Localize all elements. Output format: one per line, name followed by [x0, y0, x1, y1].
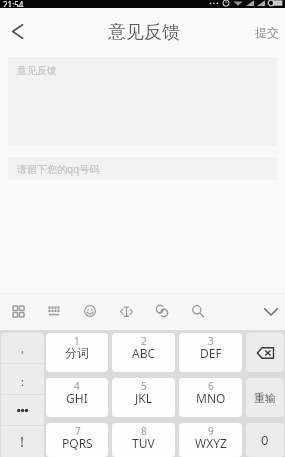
- staticText: ABC: [132, 345, 156, 361]
- staticText: 意见反馈: [108, 21, 180, 44]
- button[interactable]: 9: [179, 423, 242, 457]
- button[interactable]: Backspace: [246, 333, 284, 372]
- button[interactable]: !: [1, 426, 44, 456]
- button[interactable]: More symbols: [1, 395, 44, 425]
- button[interactable]: :: [1, 364, 44, 394]
- button[interactable]: 2: [112, 333, 175, 372]
- button[interactable]: Hide keyboard: [258, 299, 284, 325]
- button[interactable]: Search: [180, 296, 216, 326]
- staticText: JKL: [135, 390, 152, 406]
- staticText: 5: [141, 379, 147, 393]
- button[interactable]: Move cursor: [108, 296, 144, 326]
- staticText: 4: [74, 379, 80, 393]
- staticText: 6: [208, 379, 214, 393]
- staticText: WXYZ: [195, 435, 227, 451]
- staticText: 意见反馈: [17, 64, 57, 77]
- button[interactable]: 提交: [249, 17, 285, 48]
- button[interactable]: 8: [112, 423, 175, 457]
- staticText: 1: [74, 334, 80, 348]
- button[interactable]: 意见反馈: [8, 57, 277, 146]
- staticText: 7: [75, 424, 81, 438]
- staticText: DEF: [200, 345, 222, 361]
- button[interactable]: 0: [246, 423, 284, 457]
- staticText: 0: [261, 431, 269, 449]
- button[interactable]: 请留下您的qq号码: [8, 157, 277, 180]
- staticText: :: [21, 374, 24, 389]
- button[interactable]: 4: [46, 378, 108, 417]
- staticText: ,: [21, 341, 24, 356]
- staticText: 2: [141, 334, 147, 348]
- button[interactable]: 3: [179, 333, 242, 372]
- button[interactable]: 重输: [246, 378, 284, 417]
- button[interactable]: Emoji: [72, 296, 108, 326]
- staticText: 重输: [254, 391, 276, 405]
- button[interactable]: ,: [1, 333, 44, 363]
- staticText: 9: [208, 424, 214, 438]
- button[interactable]: 6: [179, 378, 242, 417]
- button[interactable]: 1: [46, 333, 108, 372]
- button[interactable]: 7: [46, 423, 108, 457]
- staticText: 8: [141, 424, 147, 438]
- staticText: PQRS: [62, 435, 93, 451]
- staticText: MNO: [196, 390, 226, 406]
- button[interactable]: Back: [0, 14, 34, 48]
- staticText: 3: [208, 334, 214, 348]
- button[interactable]: Keyboard layouts: [0, 296, 36, 326]
- staticText: !: [20, 431, 25, 451]
- staticText: 分词: [65, 345, 89, 360]
- staticText: TUV: [132, 435, 155, 451]
- button[interactable]: Keyboard: [36, 296, 72, 326]
- staticText: 请留下您的qq号码: [17, 162, 100, 176]
- staticText: GHI: [66, 390, 88, 406]
- staticText: 21:54: [3, 0, 24, 7]
- button[interactable]: Clipboard: [144, 296, 180, 326]
- staticText: 提交: [255, 25, 279, 40]
- button[interactable]: 5: [112, 378, 175, 417]
